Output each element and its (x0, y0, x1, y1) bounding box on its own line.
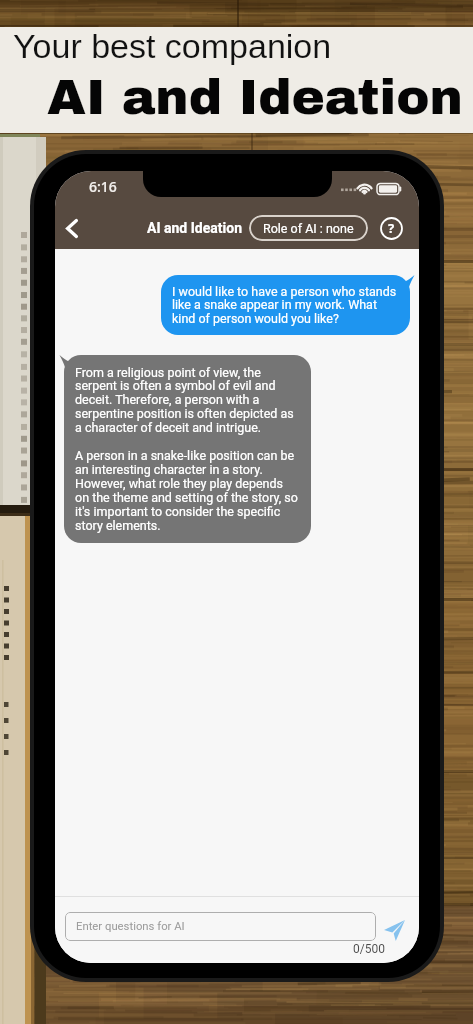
button[interactable]: Send (376, 912, 413, 949)
staticText: AI and Ideation (47, 70, 463, 124)
staticText: Role of AI : none (263, 221, 354, 236)
button[interactable]: Back (56, 212, 88, 244)
button[interactable]: Role of AI : none (249, 215, 368, 241)
button[interactable]: Enter questions for AI (65, 912, 376, 941)
staticText: Enter questions for AI (76, 920, 185, 933)
staticText: 6:16 (89, 177, 117, 196)
staticText: From a religious point of view, the serp… (75, 365, 300, 533)
button[interactable]: From a religious point of view, the serp… (64, 355, 311, 543)
staticText: 0/500 (353, 942, 385, 956)
staticText: ? (388, 219, 395, 237)
button[interactable]: I would like to have a person who stands… (161, 275, 410, 335)
staticText: I would like to have a person who stands… (172, 284, 399, 326)
staticText: Your best companion (13, 27, 332, 65)
staticText: AI and Ideation (147, 220, 242, 236)
button[interactable]: Help (378, 215, 404, 241)
